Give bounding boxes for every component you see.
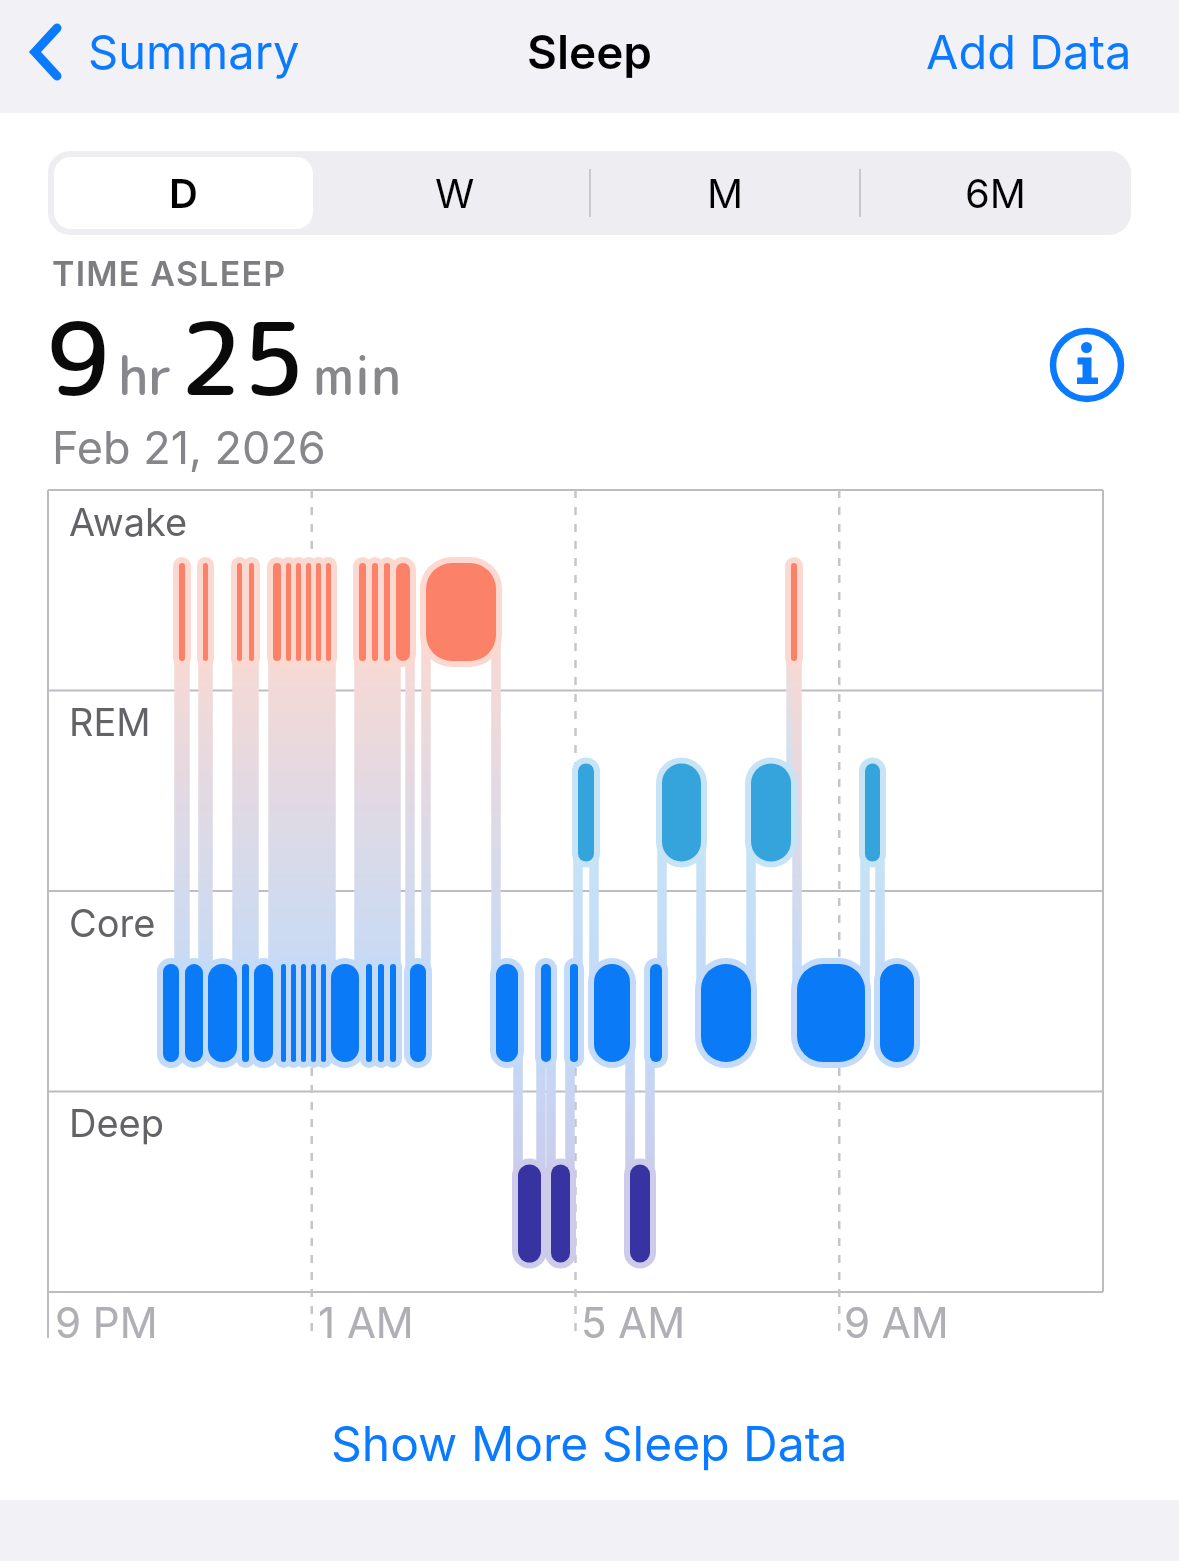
staticText: 5 AM bbox=[581, 1297, 686, 1348]
button[interactable]: D bbox=[48, 151, 319, 235]
staticText: 6M bbox=[965, 169, 1026, 217]
staticText: 9 bbox=[47, 287, 110, 427]
staticText: M bbox=[707, 169, 744, 217]
button[interactable] bbox=[1049, 327, 1125, 403]
staticText: hr bbox=[118, 339, 173, 412]
staticText: Core bbox=[69, 900, 156, 946]
staticText: 25 bbox=[179, 287, 305, 427]
staticText: 9 PM bbox=[55, 1297, 158, 1348]
staticText: Sleep bbox=[527, 24, 653, 80]
button[interactable] bbox=[54, 157, 313, 229]
button[interactable]: M bbox=[590, 151, 861, 235]
staticText: 9 AM bbox=[844, 1297, 949, 1348]
staticText: Summary bbox=[88, 23, 300, 80]
button[interactable]: Show More Sleep Data bbox=[331, 1414, 848, 1472]
staticText: REM bbox=[69, 699, 151, 745]
staticText: W bbox=[435, 169, 475, 217]
staticText: Deep bbox=[69, 1100, 164, 1146]
button[interactable]: 6M bbox=[860, 151, 1131, 235]
button[interactable]: W bbox=[319, 151, 590, 235]
staticText: D bbox=[169, 169, 198, 217]
button[interactable]: Summary bbox=[30, 23, 300, 80]
staticText: Awake bbox=[69, 499, 188, 545]
button[interactable]: Add Data bbox=[926, 23, 1132, 80]
staticText: 1 AM bbox=[318, 1297, 414, 1348]
staticText: min bbox=[313, 339, 401, 412]
staticText: TIME ASLEEP bbox=[52, 253, 287, 294]
staticText: Feb 21, 2026 bbox=[52, 420, 326, 474]
